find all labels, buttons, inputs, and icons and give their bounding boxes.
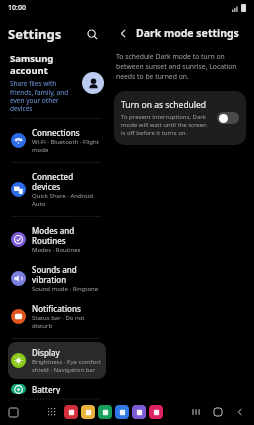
staticText: Sounds and vibration [32,264,77,285]
button[interactable]: App 0 [64,405,78,419]
button[interactable]: App 3 [115,405,129,419]
button[interactable]: Home [210,404,226,420]
button[interactable]: Turn on as scheduled [114,91,246,145]
staticText: Samsung account [10,52,54,77]
staticText: Status bar · Do not disturb [32,314,103,330]
staticText: Connections [32,127,80,138]
button[interactable]: Profile [82,72,104,94]
button[interactable]: Recents panel [6,405,20,419]
staticText: Modes and Routines [32,225,103,246]
staticText: Turn on as scheduled [121,99,207,111]
staticText: Wi-Fi · Bluetooth · Flight mode [32,138,99,154]
button[interactable]: Modes and Routines [8,220,106,259]
staticText: Modes · Routines [32,246,81,254]
staticText: Battery [32,384,61,394]
button[interactable]: Battery [8,379,106,399]
staticText: Connected devices [32,171,103,192]
button[interactable]: Apps [45,405,59,419]
button[interactable]: Sounds and vibration [8,259,106,298]
button[interactable]: Notifications [8,298,106,335]
button[interactable]: Connected devices [8,166,106,213]
button[interactable]: Back [232,404,248,420]
staticText: Dark mode settings [136,26,239,40]
staticText: To schedule Dark mode to turn on between… [116,52,244,81]
staticText: Settings [8,25,62,43]
staticText: 10:00 [8,3,26,13]
button[interactable]: Connections [8,122,106,159]
staticText: Display [32,347,60,358]
staticText: Quick Share · Android Auto [32,192,103,208]
staticText: To prevent interruptions, Dark mode will… [121,113,212,137]
button[interactable]: Recent apps [188,404,204,420]
button[interactable]: Back [114,24,132,42]
button[interactable]: Display [8,342,106,379]
button[interactable]: Search [82,24,102,44]
button[interactable]: App 4 [132,405,146,419]
staticText: Notifications [32,303,81,314]
button[interactable]: Samsung account [8,50,106,115]
button[interactable]: App 1 [81,405,95,419]
staticText: Sound mode · Ringtone [32,285,99,293]
staticText: Share files with friends, family, and ev… [10,79,69,113]
button[interactable]: App 5 [149,405,163,419]
staticText: Brightness · Eye comfort shield · Naviga… [32,358,101,374]
button[interactable]: App 2 [98,405,112,419]
button[interactable]: Turn on as scheduled toggle [217,112,239,124]
